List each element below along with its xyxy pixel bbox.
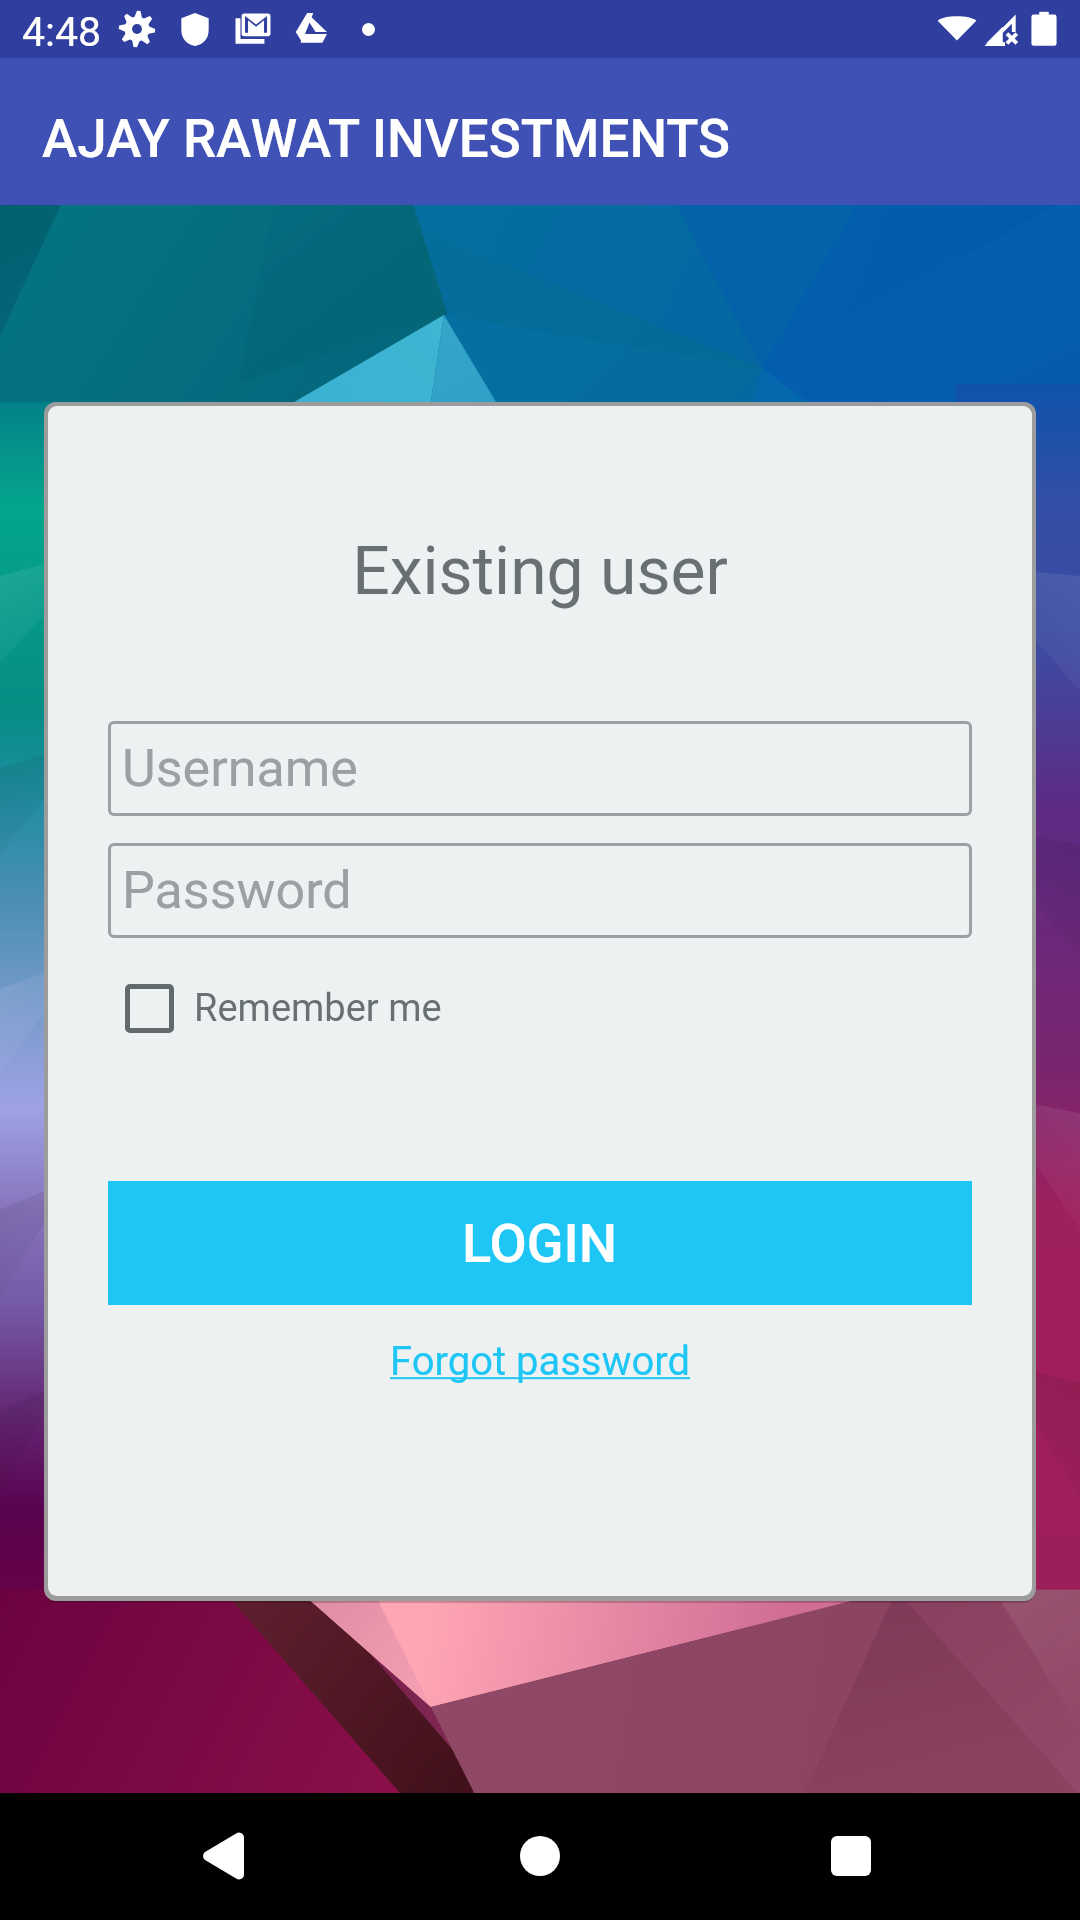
staticText: Forgot password bbox=[390, 1338, 691, 1385]
staticText: Remember me bbox=[194, 986, 442, 1031]
button[interactable]: Back bbox=[183, 1814, 267, 1898]
button[interactable]: Home bbox=[498, 1814, 582, 1898]
staticText: Username bbox=[122, 738, 358, 799]
button[interactable]: Password bbox=[108, 843, 972, 938]
button[interactable]: Forgot password bbox=[372, 1332, 709, 1391]
staticText: AJAY RAWAT INVESTMENTS bbox=[42, 108, 731, 170]
staticText: 4:48 bbox=[22, 8, 102, 56]
staticText: Password bbox=[122, 860, 352, 921]
button[interactable]: AJAY RAWAT INVESTMENTS bbox=[0, 58, 1080, 205]
button[interactable]: Recents bbox=[809, 1814, 893, 1898]
button[interactable]: Username bbox=[108, 721, 972, 816]
button[interactable]: Remember me bbox=[125, 984, 442, 1033]
staticText: LOGIN bbox=[462, 1212, 618, 1275]
button[interactable]: LOGIN bbox=[108, 1181, 972, 1305]
staticText: Existing user bbox=[48, 533, 1032, 610]
